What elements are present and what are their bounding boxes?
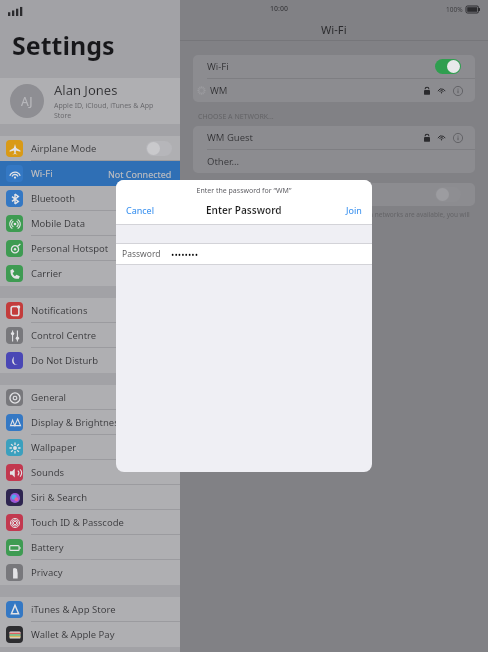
button[interactable]: Battery bbox=[0, 535, 180, 560]
staticText: Enter the password for “WM” bbox=[116, 186, 372, 196]
staticText: Settings bbox=[12, 28, 115, 62]
staticText: Mobile Data bbox=[31, 217, 85, 230]
staticText: AJ bbox=[21, 93, 33, 109]
staticText: Wi-Fi bbox=[321, 22, 347, 37]
button[interactable]: WM bbox=[193, 79, 475, 102]
staticText: Privacy bbox=[31, 566, 63, 579]
staticText: Wi-Fi bbox=[31, 167, 53, 180]
other: Network info bbox=[453, 133, 463, 143]
button[interactable]: General bbox=[0, 385, 180, 410]
button[interactable]: Wi-Fi toggle on bbox=[435, 59, 461, 74]
staticText: Do Not Disturb bbox=[31, 354, 99, 367]
staticText: •••••••• bbox=[171, 248, 199, 260]
button[interactable]: Personal Hotspot bbox=[0, 236, 180, 261]
button[interactable]: Airplane Mode bbox=[0, 136, 180, 161]
button[interactable]: Notifications bbox=[0, 298, 180, 323]
button[interactable]: Mobile Data bbox=[0, 211, 180, 236]
button[interactable]: WM Guest bbox=[193, 126, 475, 149]
button[interactable]: Other... bbox=[193, 150, 475, 173]
staticText: Not Connected bbox=[108, 168, 172, 180]
staticText: Password bbox=[122, 248, 161, 260]
button[interactable]: AJ bbox=[0, 78, 180, 124]
button[interactable]: Ask to Join Networks toggle bbox=[435, 187, 461, 202]
staticText: Wallet & Apple Pay bbox=[31, 628, 115, 641]
button[interactable]: Display & Brightness bbox=[0, 410, 180, 435]
staticText: Wi-Fi bbox=[207, 60, 229, 73]
other: Network info bbox=[453, 86, 463, 96]
staticText: Battery bbox=[31, 541, 64, 554]
button[interactable]: Touch ID & Passcode bbox=[0, 510, 180, 535]
staticText: Known networks will be joined automatica… bbox=[198, 210, 470, 237]
button[interactable]: Wi-Fi bbox=[0, 161, 180, 186]
staticText: Join bbox=[346, 204, 362, 216]
staticText: WM bbox=[210, 84, 228, 97]
staticText: Alan Jones bbox=[54, 81, 118, 99]
staticText: Bluetooth bbox=[31, 192, 76, 205]
staticText: 100% bbox=[446, 5, 463, 14]
button[interactable]: Wallet & Apple Pay bbox=[0, 622, 180, 647]
button[interactable]: Cancel bbox=[116, 202, 165, 218]
staticText: CHOOSE A NETWORK... bbox=[198, 112, 274, 122]
staticText: Personal Hotspot bbox=[31, 242, 109, 255]
button[interactable]: Privacy bbox=[0, 560, 180, 585]
button[interactable]: Bluetooth bbox=[0, 186, 180, 211]
staticText: Notifications bbox=[31, 304, 88, 317]
staticText: Touch ID & Passcode bbox=[31, 516, 124, 529]
button[interactable]: Join bbox=[336, 202, 372, 218]
button[interactable]: Ask to Join Networks bbox=[193, 183, 475, 206]
button[interactable]: Wallpaper bbox=[0, 435, 180, 460]
staticText: Sounds bbox=[31, 466, 65, 479]
button[interactable]: Password bbox=[116, 244, 372, 264]
staticText: 10:00 bbox=[270, 4, 288, 14]
button[interactable]: Control Centre bbox=[0, 323, 180, 348]
staticText: Carrier bbox=[31, 267, 62, 280]
staticText: Apple ID, iCloud, iTunes & App Store bbox=[54, 101, 170, 121]
button[interactable]: Siri & Search bbox=[0, 485, 180, 510]
button[interactable]: Carrier bbox=[0, 261, 180, 286]
button[interactable]: Airplane Mode toggle bbox=[146, 141, 172, 156]
button[interactable]: iTunes & App Store bbox=[0, 597, 180, 622]
staticText: Wallpaper bbox=[31, 441, 77, 454]
staticText: Airplane Mode bbox=[31, 142, 97, 155]
staticText: General bbox=[31, 391, 67, 404]
staticText: Enter Password bbox=[206, 203, 282, 217]
button[interactable]: Do Not Disturb bbox=[0, 348, 180, 373]
button[interactable]: Sounds bbox=[0, 460, 180, 485]
staticText: Other... bbox=[207, 155, 240, 168]
staticText: iTunes & App Store bbox=[31, 603, 116, 616]
staticText: Control Centre bbox=[31, 329, 97, 342]
staticText: Display & Brightness bbox=[31, 416, 124, 429]
staticText: Cancel bbox=[126, 204, 155, 216]
staticText: Siri & Search bbox=[31, 491, 88, 504]
staticText: Ask to Join Networks bbox=[207, 188, 299, 201]
staticText: WM Guest bbox=[207, 131, 254, 144]
button[interactable]: Wi-Fi bbox=[193, 55, 475, 78]
